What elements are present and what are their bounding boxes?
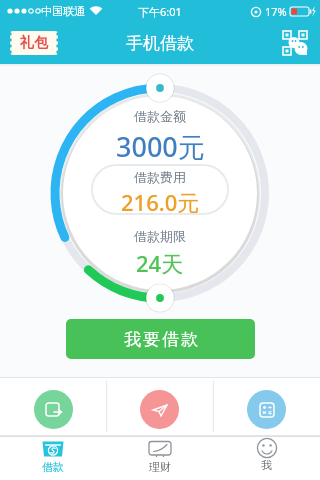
staticText: 3000元 [116,128,205,165]
staticText: 手机借款 [126,33,194,54]
button[interactable] [282,30,308,56]
button[interactable]: 我要借款 [66,319,255,359]
staticText: 礼包 [20,34,48,52]
staticText: 17% [265,4,287,19]
button[interactable] [213,377,320,436]
staticText: 我 [261,458,272,472]
staticText: 借款费用 [134,169,186,185]
staticText: 216.0元 [121,187,200,217]
button[interactable]: 借款 [0,436,106,480]
staticText: 24天 [136,248,184,278]
staticText: 中国联通 [41,4,85,18]
button[interactable]: 理财 [106,436,213,480]
button[interactable] [0,377,106,436]
staticText: 借款期限 [134,228,186,244]
staticText: 借款金额 [134,108,186,124]
button[interactable]: 礼包 [10,31,58,55]
staticText: 借款 [42,460,64,474]
staticText: 下午6:01 [138,4,182,19]
button[interactable]: 我 [213,436,320,480]
staticText: 我要借款 [123,329,199,350]
button[interactable] [106,377,213,436]
staticText: 理财 [149,460,171,474]
